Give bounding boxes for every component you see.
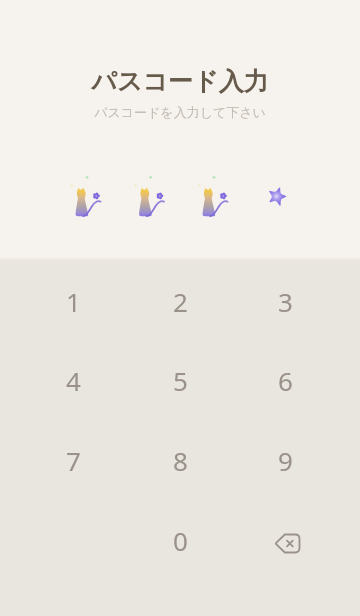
button[interactable]: 3 xyxy=(243,265,327,337)
button[interactable]: 7 xyxy=(31,424,115,496)
staticText: 1 xyxy=(66,284,81,319)
staticText: 4 xyxy=(66,363,81,398)
staticText: 5 xyxy=(173,363,188,398)
button[interactable]: 4 xyxy=(31,344,115,416)
button[interactable]: 9 xyxy=(243,424,327,496)
button[interactable]: Backspace xyxy=(243,504,327,576)
button[interactable]: 1 xyxy=(31,265,115,337)
button[interactable]: 6 xyxy=(243,344,327,416)
staticText: 0 xyxy=(173,523,188,558)
staticText: 3 xyxy=(278,284,293,319)
button[interactable]: 0 xyxy=(138,504,222,576)
staticText: 9 xyxy=(278,443,293,478)
staticText: 7 xyxy=(66,443,81,478)
staticText: 6 xyxy=(278,363,293,398)
staticText: パスコード入力 xyxy=(91,66,269,97)
button[interactable]: 2 xyxy=(138,265,222,337)
button[interactable]: 5 xyxy=(138,344,222,416)
staticText: 2 xyxy=(173,284,188,319)
staticText: パスコードを入力して下さい xyxy=(94,104,266,120)
button[interactable]: 8 xyxy=(138,424,222,496)
staticText: 8 xyxy=(173,443,188,478)
